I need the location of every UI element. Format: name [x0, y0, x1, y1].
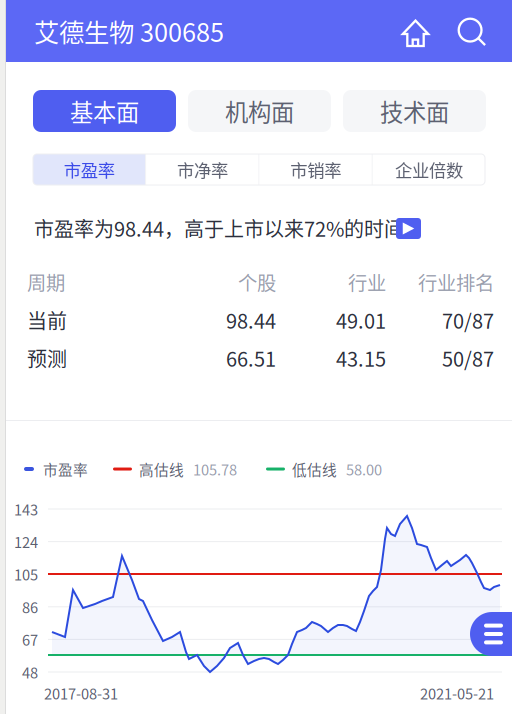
- staticText: 行业排名: [418, 268, 494, 296]
- staticText: 2017-08-31: [44, 682, 118, 704]
- staticText: 行业: [348, 268, 386, 296]
- staticText: 艾德生物 300685: [34, 13, 224, 49]
- staticText: 43.15: [336, 343, 386, 372]
- staticText: 市盈率: [64, 157, 115, 182]
- staticText: 市净率: [177, 157, 228, 182]
- staticText: 个股: [238, 268, 276, 296]
- staticText: 2021-05-21: [420, 682, 494, 704]
- staticText: 市盈率为98.44，高于上市以来72%的时间: [34, 213, 404, 242]
- button[interactable]: 市净率: [146, 154, 258, 185]
- staticText: 市盈率: [43, 458, 88, 480]
- staticText: 48: [22, 661, 38, 683]
- staticText: 基本面: [70, 94, 139, 128]
- staticText: 高估线: [139, 458, 184, 480]
- button[interactable]: 市销率: [259, 154, 372, 185]
- button[interactable]: 技术面: [343, 90, 486, 132]
- staticText: 机构面: [225, 94, 294, 128]
- staticText: 70/87: [442, 305, 494, 334]
- staticText: 低估线: [292, 458, 337, 480]
- staticText: 67: [22, 629, 38, 650]
- staticText: 企业倍数: [395, 157, 463, 182]
- staticText: 98.44: [226, 305, 276, 334]
- staticText: 105.78: [193, 458, 237, 480]
- button[interactable]: 基本面: [33, 90, 176, 132]
- button[interactable]: 机构面: [188, 90, 331, 132]
- staticText: 技术面: [380, 94, 449, 128]
- staticText: 86: [22, 596, 38, 617]
- button[interactable]: Play explanation: [396, 218, 421, 239]
- button[interactable]: Chart options: [470, 612, 512, 656]
- staticText: 当前: [27, 305, 67, 334]
- button[interactable]: 企业倍数: [373, 154, 485, 185]
- staticText: 58.00: [346, 458, 382, 480]
- button[interactable]: 市盈率: [33, 154, 145, 185]
- button[interactable]: Search: [452, 12, 492, 52]
- staticText: 66.51: [226, 343, 276, 372]
- staticText: 124: [14, 531, 38, 552]
- staticText: 预测: [27, 343, 67, 372]
- button[interactable]: Home: [395, 13, 435, 53]
- staticText: 143: [14, 498, 38, 520]
- staticText: 49.01: [336, 305, 386, 334]
- staticText: 105: [14, 564, 38, 585]
- staticText: 50/87: [442, 343, 494, 372]
- staticText: 周期: [27, 268, 65, 296]
- staticText: 市销率: [290, 157, 341, 182]
